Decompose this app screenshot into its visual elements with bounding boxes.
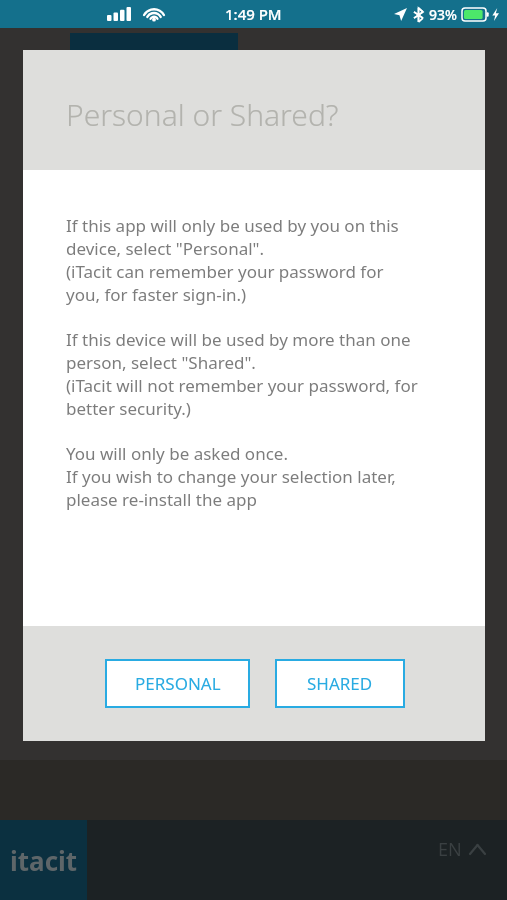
staticText: EN	[438, 837, 462, 862]
staticText: 1:49 PM	[225, 4, 282, 24]
button[interactable]: itacit	[0, 820, 87, 900]
other: Expand language menu	[470, 845, 485, 854]
staticText: (iTacit can remember your password for	[66, 260, 384, 283]
staticText: please re-install the app	[66, 488, 257, 511]
staticText: SHARED	[307, 672, 373, 695]
staticText: (iTacit will not remember your password,…	[66, 374, 418, 397]
staticText: If this device will be used by more than…	[66, 328, 411, 351]
button[interactable]: EN	[438, 837, 485, 862]
staticText: PERSONAL	[135, 672, 221, 695]
staticText: You will only be asked once.	[66, 442, 288, 465]
staticText: If you wish to change your selection lat…	[66, 465, 396, 488]
staticText: device, select "Personal".	[66, 237, 265, 260]
staticText: 93%	[429, 5, 457, 24]
staticText: Personal or Shared?	[66, 94, 339, 135]
staticText: better security.)	[66, 397, 191, 420]
staticText: If this app will only be used by you on …	[66, 214, 399, 237]
button[interactable]: PERSONAL	[105, 659, 250, 708]
staticText: person, select "Shared".	[66, 351, 256, 374]
button[interactable]: SHARED	[275, 659, 405, 708]
staticText: you, for faster sign-in.)	[66, 283, 247, 306]
staticText: itacit	[10, 843, 78, 878]
